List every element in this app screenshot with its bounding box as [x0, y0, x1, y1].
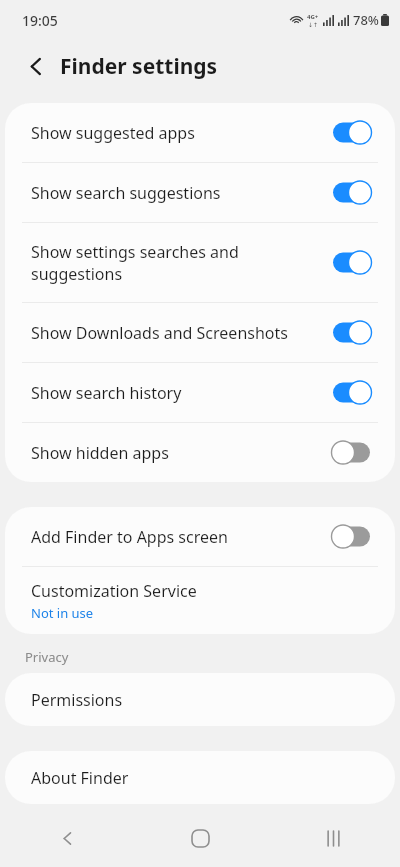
- staticText: Add Finder to Apps screen: [31, 526, 325, 548]
- button[interactable]: On: [333, 321, 370, 344]
- button[interactable]: Show hidden apps: [5, 423, 395, 482]
- button[interactable]: Show search suggestions: [5, 163, 395, 222]
- staticText: About Finder: [31, 767, 129, 789]
- staticText: Show suggested apps: [31, 122, 325, 144]
- button[interactable]: About Finder: [5, 751, 395, 804]
- button[interactable]: Permissions: [5, 673, 395, 726]
- staticText: 78%: [353, 11, 379, 29]
- button[interactable]: Show settings searches and suggestions: [5, 223, 395, 302]
- button[interactable]: Show suggested apps: [5, 103, 395, 162]
- button[interactable]: On: [333, 251, 370, 274]
- staticText: Show Downloads and Screenshots: [31, 322, 325, 344]
- staticText: 19:05: [22, 11, 58, 30]
- button[interactable]: Show search history: [5, 363, 395, 422]
- staticText: Finder settings: [60, 52, 218, 81]
- staticText: Customization Service: [31, 580, 197, 602]
- staticText: Show search suggestions: [31, 182, 325, 204]
- staticText: Privacy: [25, 648, 69, 666]
- button[interactable]: On: [333, 181, 370, 204]
- button[interactable]: Back: [0, 810, 134, 867]
- staticText: 4G+: [307, 13, 319, 21]
- staticText: Show settings searches and suggestions: [31, 241, 325, 285]
- button[interactable]: Show Downloads and Screenshots: [5, 303, 395, 362]
- staticText: Permissions: [31, 689, 123, 711]
- staticText: Show search history: [31, 382, 325, 404]
- button[interactable]: On: [333, 381, 370, 404]
- button[interactable]: Customization Service: [5, 567, 395, 634]
- staticText: ↓↑: [308, 21, 319, 28]
- button[interactable]: Recents: [267, 810, 400, 867]
- button[interactable]: Off: [333, 525, 370, 548]
- button[interactable]: Home: [134, 810, 267, 867]
- staticText: Show hidden apps: [31, 442, 325, 464]
- staticText: Not in use: [31, 604, 94, 622]
- button[interactable]: Add Finder to Apps screen: [5, 507, 395, 566]
- button[interactable]: Off: [333, 441, 370, 464]
- button[interactable]: Back: [18, 48, 54, 84]
- button[interactable]: On: [333, 121, 370, 144]
